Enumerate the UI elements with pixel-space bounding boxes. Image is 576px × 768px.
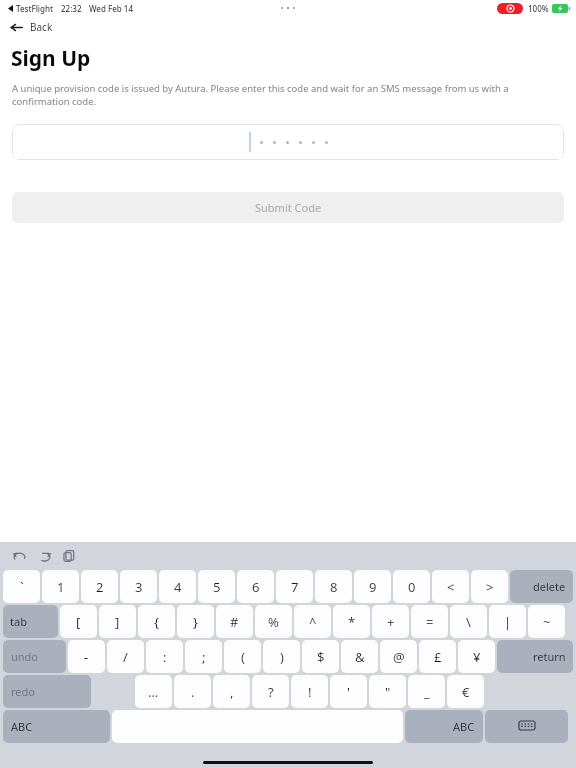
staticText: Submit Code: [255, 200, 322, 215]
button[interactable]: Undo: [12, 549, 27, 564]
staticText: ;: [202, 648, 206, 666]
button[interactable]: -: [68, 640, 105, 673]
button[interactable]: [: [60, 605, 97, 638]
staticText: 9: [369, 578, 377, 596]
staticText: [: [76, 613, 81, 631]
button[interactable]: Paste: [62, 549, 76, 563]
staticText: <: [447, 578, 455, 596]
staticText: =: [426, 613, 434, 631]
button[interactable]: …: [135, 675, 172, 708]
button[interactable]: ^: [294, 605, 331, 638]
button[interactable]: £: [419, 640, 456, 673]
button[interactable]: 8: [315, 570, 352, 603]
button[interactable]: Back: [0, 16, 576, 38]
button[interactable]: `: [3, 570, 40, 603]
button[interactable]: |: [489, 605, 526, 638]
button[interactable]: .: [174, 675, 211, 708]
button[interactable]: ?: [252, 675, 289, 708]
button[interactable]: 6: [237, 570, 274, 603]
button[interactable]: !: [291, 675, 328, 708]
button[interactable]: #: [216, 605, 253, 638]
button[interactable]: ': [330, 675, 367, 708]
staticText: ): [280, 648, 284, 666]
staticText: …: [148, 683, 159, 701]
staticText: *: [348, 613, 356, 631]
button[interactable]: ~: [528, 605, 565, 638]
button[interactable]: 2: [81, 570, 118, 603]
staticText: ": [385, 683, 391, 701]
button[interactable]: Redo: [37, 549, 52, 564]
button[interactable]: }: [177, 605, 214, 638]
button[interactable]: [12, 124, 564, 160]
staticText: &: [355, 648, 365, 666]
button[interactable]: ,: [213, 675, 250, 708]
button[interactable]: 0: [393, 570, 430, 603]
button[interactable]: /: [107, 640, 144, 673]
button[interactable]: delete: [510, 570, 573, 603]
button[interactable]: (: [224, 640, 261, 673]
button[interactable]: \: [450, 605, 487, 638]
button[interactable]: >: [471, 570, 508, 603]
button[interactable]: Submit Code: [12, 192, 564, 223]
staticText: Back: [30, 20, 53, 34]
staticText: %: [268, 613, 279, 631]
staticText: undo: [11, 649, 39, 664]
button[interactable]: 5: [198, 570, 235, 603]
staticText: _: [424, 683, 430, 701]
button[interactable]: +: [372, 605, 409, 638]
staticText: 1: [57, 578, 65, 596]
staticText: ?: [268, 683, 274, 701]
staticText: ,: [230, 683, 234, 701]
button[interactable]: Hide keyboard: [485, 710, 568, 743]
staticText: ^: [309, 613, 317, 631]
button[interactable]: %: [255, 605, 292, 638]
button[interactable]: 4: [159, 570, 196, 603]
staticText: 22:32: [61, 3, 82, 14]
staticText: `: [20, 578, 24, 596]
button[interactable]: 7: [276, 570, 313, 603]
staticText: Wed Feb 14: [89, 3, 134, 14]
staticText: .: [191, 683, 195, 701]
button[interactable]: redo: [3, 675, 91, 708]
staticText: {: [154, 613, 159, 631]
other: Hide keyboard: [519, 721, 535, 733]
button[interactable]: ": [369, 675, 406, 708]
button[interactable]: @: [380, 640, 417, 673]
staticText: ]: [115, 613, 120, 631]
staticText: 4: [174, 578, 182, 596]
staticText: 2: [96, 578, 104, 596]
staticText: 3: [135, 578, 143, 596]
button[interactable]: $: [302, 640, 339, 673]
button[interactable]: {: [138, 605, 175, 638]
staticText: |: [504, 613, 512, 631]
button[interactable]: return: [497, 640, 573, 673]
staticText: $: [317, 648, 325, 666]
button[interactable]: ABC: [405, 710, 483, 743]
staticText: 5: [213, 578, 221, 596]
staticText: >: [486, 578, 494, 596]
staticText: redo: [11, 684, 35, 699]
staticText: 7: [291, 578, 299, 596]
staticText: :: [163, 648, 167, 666]
button[interactable]: *: [333, 605, 370, 638]
button[interactable]: ¥: [458, 640, 495, 673]
button[interactable]: 1: [42, 570, 79, 603]
button[interactable]: €: [447, 675, 484, 708]
button[interactable]: ]: [99, 605, 136, 638]
button[interactable]: <: [432, 570, 469, 603]
button[interactable]: =: [411, 605, 448, 638]
button[interactable]: 9: [354, 570, 391, 603]
button[interactable]: _: [408, 675, 445, 708]
staticText: +: [387, 613, 395, 631]
button[interactable]: ;: [185, 640, 222, 673]
button[interactable]: ABC: [3, 710, 110, 743]
button[interactable]: undo: [3, 640, 66, 673]
staticText: A unique provision code is issued by Aut…: [12, 82, 516, 108]
button[interactable]: 3: [120, 570, 157, 603]
button[interactable]: &: [341, 640, 378, 673]
button[interactable]: tab: [3, 605, 58, 638]
staticText: tab: [10, 614, 27, 629]
button[interactable]: :: [146, 640, 183, 673]
button[interactable]: ): [263, 640, 300, 673]
